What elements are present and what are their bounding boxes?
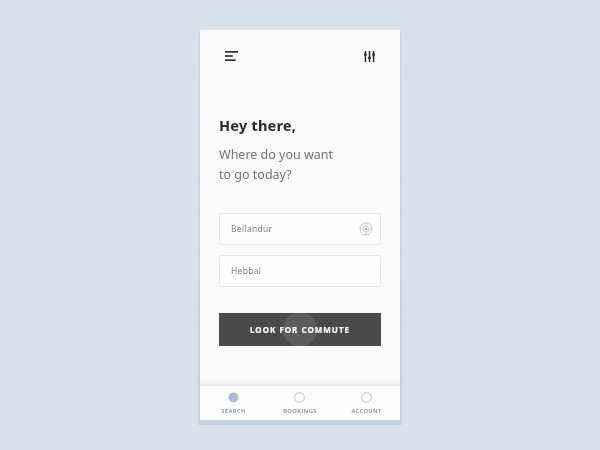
button[interactable]: Use current location bbox=[359, 222, 373, 236]
button[interactable]: BOOKINGS bbox=[266, 392, 333, 415]
button[interactable]: LOOK FOR COMMUTE bbox=[219, 313, 381, 346]
staticText: to go today? bbox=[219, 166, 292, 183]
staticText: LOOK FOR COMMUTE bbox=[250, 324, 350, 335]
staticText: BOOKINGS bbox=[283, 407, 317, 415]
button[interactable]: Filters bbox=[357, 44, 381, 68]
button[interactable]: Hebbal bbox=[219, 255, 381, 287]
staticText: Where do you want bbox=[219, 146, 334, 163]
button[interactable]: SEARCH bbox=[200, 392, 266, 415]
button[interactable]: Bellandur bbox=[219, 213, 381, 245]
staticText: Bellandur bbox=[231, 223, 273, 235]
staticText: Hebbal bbox=[231, 265, 262, 277]
button[interactable]: Menu bbox=[219, 44, 243, 68]
staticText: ACCOUNT bbox=[351, 407, 382, 415]
staticText: SEARCH bbox=[221, 407, 246, 415]
button[interactable]: ACCOUNT bbox=[333, 392, 400, 415]
staticText: Hey there, bbox=[219, 115, 297, 135]
